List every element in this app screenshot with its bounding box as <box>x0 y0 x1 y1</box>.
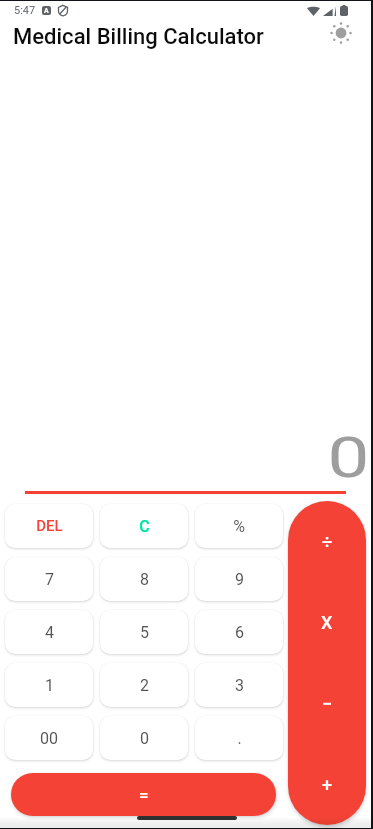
staticText: 0 <box>327 425 370 491</box>
button[interactable]: 0 <box>100 716 188 760</box>
staticText: Medical Billing Calculator <box>13 24 264 50</box>
staticText: 7 <box>45 570 54 589</box>
staticText: 8 <box>140 570 149 589</box>
staticText: 6 <box>235 623 244 642</box>
button[interactable]: 3 <box>195 663 283 707</box>
button[interactable]: 2 <box>100 663 188 707</box>
staticText: 0 <box>140 729 149 748</box>
button[interactable]: 5 <box>100 610 188 654</box>
staticText: DEL <box>36 517 63 535</box>
button[interactable]: + <box>288 744 366 825</box>
staticText: 5:47 <box>14 4 36 17</box>
button[interactable]: 1 <box>5 663 93 707</box>
staticText: + <box>322 774 333 795</box>
staticText: X <box>321 612 333 633</box>
staticText: 9 <box>235 570 244 589</box>
staticText: − <box>322 693 333 714</box>
button[interactable]: 6 <box>195 610 283 654</box>
button[interactable]: 8 <box>100 557 188 601</box>
button[interactable]: 7 <box>5 557 93 601</box>
button[interactable]: % <box>195 504 283 548</box>
button[interactable]: DEL <box>5 504 93 548</box>
button[interactable]: ÷ <box>288 501 366 582</box>
staticText: C <box>139 517 150 536</box>
staticText: = <box>139 785 149 805</box>
staticText: A <box>44 7 49 15</box>
button[interactable]: 4 <box>5 610 93 654</box>
staticText: % <box>233 517 245 536</box>
button[interactable]: . <box>195 716 283 760</box>
button[interactable]: Toggle theme <box>325 21 357 45</box>
staticText: ÷ <box>322 531 333 552</box>
staticText: 4 <box>45 623 54 642</box>
staticText: 5 <box>140 623 149 642</box>
button[interactable]: − <box>288 663 366 744</box>
button[interactable]: 00 <box>5 716 93 760</box>
staticText: 1 <box>45 676 54 695</box>
staticText: 00 <box>40 729 58 748</box>
button[interactable]: X <box>288 582 366 663</box>
staticText: 2 <box>140 676 149 695</box>
button[interactable]: = <box>11 773 276 816</box>
staticText: . <box>237 729 242 748</box>
staticText: 3 <box>235 676 244 695</box>
button[interactable]: C <box>100 504 188 548</box>
button[interactable]: 9 <box>195 557 283 601</box>
